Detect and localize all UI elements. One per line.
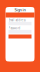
staticText: Sign in bbox=[14, 7, 25, 12]
staticText: Password bbox=[8, 26, 20, 30]
button[interactable] bbox=[8, 34, 31, 38]
staticText: Email address bbox=[8, 18, 25, 22]
